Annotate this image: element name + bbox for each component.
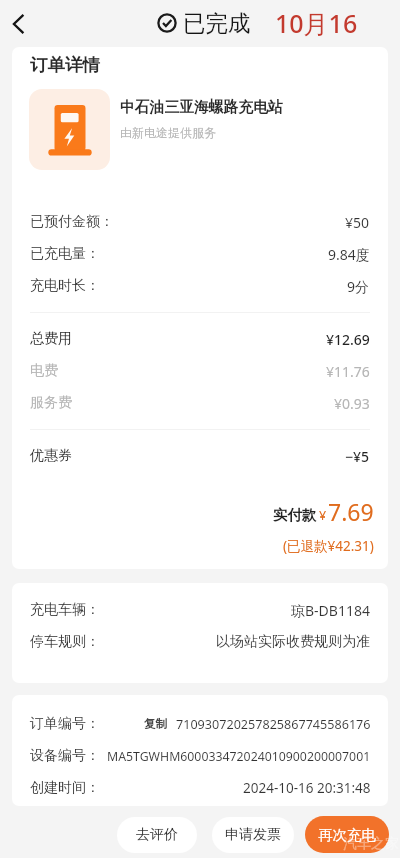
staticText: 10月16 (275, 6, 358, 40)
staticText: 汽车之家 (343, 835, 399, 853)
staticText: ¥50 (345, 213, 370, 232)
staticText: ¥ (319, 507, 327, 524)
staticText: −¥5 (345, 447, 370, 466)
staticText: ¥0.93 (334, 394, 370, 413)
staticText: 停车规则： (30, 633, 100, 651)
staticText: 服务费 (30, 394, 72, 412)
button[interactable]: 复制 (144, 717, 167, 731)
staticText: 总费用 (30, 330, 72, 348)
staticText: 已充电量： (30, 245, 100, 263)
button[interactable]: Back (0, 6, 36, 42)
staticText: 充电车辆： (30, 601, 100, 619)
staticText: 充电时长： (30, 277, 100, 295)
staticText: 由新电途提供服务 (120, 125, 216, 140)
staticText: 复制 (144, 717, 167, 731)
staticText: 9.84度 (328, 245, 370, 264)
staticText: 订单详情 (30, 54, 100, 76)
staticText: 创建时间： (30, 779, 100, 797)
staticText: 实付款 (273, 506, 317, 524)
staticText: 再次充电 (318, 826, 376, 844)
button[interactable]: 去评价 (117, 817, 197, 853)
button[interactable]: 申请发票 (212, 817, 294, 853)
staticText: 设备编号： (30, 747, 100, 765)
staticText: 去评价 (136, 826, 178, 844)
button[interactable]: 再次充电 (305, 816, 389, 853)
staticText: 已预付金额： (30, 213, 114, 231)
staticText: 电费 (30, 362, 58, 380)
staticText: 710930720257825867745586176 (176, 716, 371, 733)
staticText: 以场站实际收费规则为准 (216, 633, 370, 651)
staticText: 优惠券 (30, 447, 72, 465)
staticText: 琼B-DB1184 (291, 601, 370, 620)
staticText: 已完成 (183, 9, 251, 37)
staticText: (已退款¥42.31) (283, 537, 374, 555)
staticText: 申请发票 (225, 826, 281, 844)
staticText: ¥12.69 (326, 330, 370, 349)
staticText: 中石油三亚海螺路充电站 (120, 98, 283, 117)
staticText: ¥11.76 (326, 362, 370, 381)
staticText: 9分 (347, 277, 370, 296)
staticText: MA5TGWHM600033472024010900200007001 (107, 748, 371, 765)
staticText: 订单编号： (30, 715, 100, 733)
staticText: 2024-10-16 20:31:48 (243, 779, 371, 797)
staticText: 7.69 (328, 496, 374, 527)
